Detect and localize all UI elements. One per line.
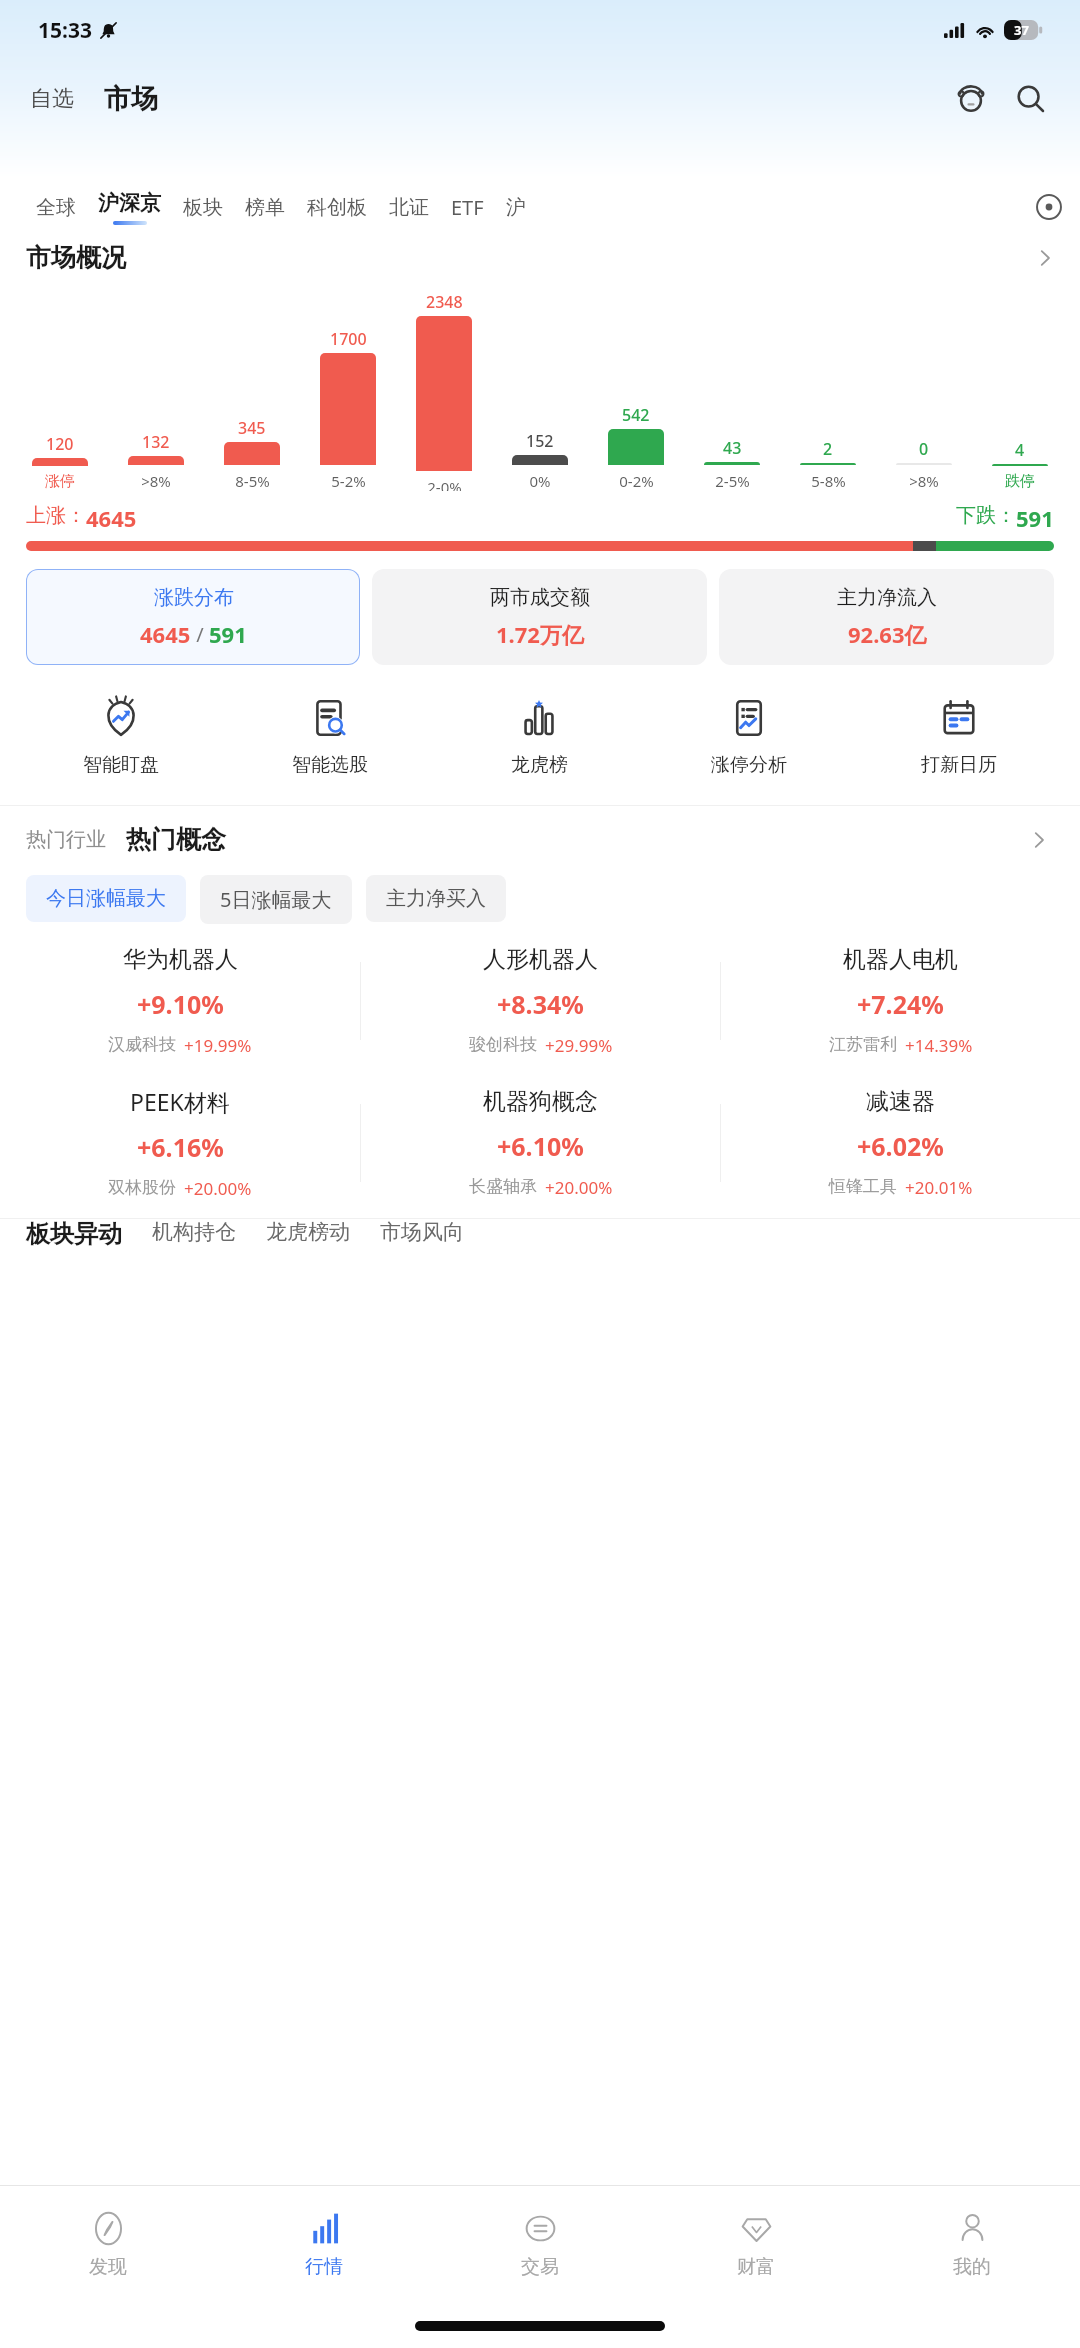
staticText: +20.00%	[545, 1176, 613, 1199]
button[interactable]: 2	[780, 438, 876, 491]
button[interactable]: 43	[684, 437, 780, 491]
button[interactable]: 龙虎榜	[434, 697, 644, 777]
staticText: 恒锋工具	[829, 1176, 897, 1197]
button[interactable]: 542	[588, 404, 684, 491]
staticText: 双林股份	[108, 1177, 176, 1198]
button[interactable]: 345	[204, 417, 300, 491]
button[interactable]: 全球	[26, 189, 86, 226]
button[interactable]: 发现	[0, 2186, 216, 2304]
staticText: 37	[1014, 21, 1029, 39]
button[interactable]: 减速器	[721, 1072, 1080, 1214]
staticText: +6.10%	[497, 1129, 584, 1163]
button[interactable]: 交易	[432, 2186, 648, 2304]
button[interactable]: 榜单	[235, 189, 295, 226]
button[interactable]: 两市成交额	[372, 569, 707, 665]
staticText: 骏创科技	[469, 1034, 537, 1055]
button[interactable]: Settings	[1026, 184, 1072, 230]
staticText: >8%	[141, 471, 171, 491]
button[interactable]: 4	[972, 439, 1068, 491]
staticText: 591	[209, 619, 247, 649]
staticText: 打新日历	[921, 753, 997, 777]
staticText: 15:33	[38, 16, 92, 45]
button[interactable]: 热门概念	[126, 818, 226, 861]
button[interactable]: 智能选股	[225, 697, 434, 777]
button[interactable]: 152	[492, 430, 588, 491]
staticText: 市场	[104, 82, 158, 116]
staticText: 5-2%	[331, 471, 366, 491]
button[interactable]: 人形机器人	[361, 930, 720, 1072]
button[interactable]: 板块	[173, 189, 233, 226]
button[interactable]: 机器人电机	[721, 930, 1080, 1072]
staticText: /	[191, 621, 209, 648]
staticText: 120	[46, 433, 74, 455]
button[interactable]: 0	[876, 438, 972, 491]
button[interactable]: Assistant	[948, 76, 994, 122]
staticText: 财富	[737, 2255, 775, 2279]
staticText: 涨停分析	[711, 753, 787, 777]
button[interactable]: 涨停分析	[644, 697, 854, 777]
button[interactable]: 132	[108, 431, 204, 491]
staticText: 5-8%	[811, 471, 846, 491]
staticText: 8-5%	[235, 471, 270, 491]
button[interactable]: 智能盯盘	[16, 697, 225, 777]
staticText: 减速器	[866, 1087, 935, 1116]
button[interactable]: More	[1024, 825, 1054, 855]
button[interactable]: 科创板	[297, 189, 377, 226]
staticText: 自选	[30, 85, 74, 113]
button[interactable]: 打新日历	[854, 697, 1064, 777]
staticText: 龙虎榜动	[266, 1219, 350, 1245]
button[interactable]: 热门行业	[26, 821, 106, 858]
staticText: 智能盯盘	[83, 753, 159, 777]
staticText: 板块	[183, 195, 223, 220]
staticText: 热门概念	[126, 824, 226, 855]
staticText: 0-2%	[619, 471, 654, 491]
staticText: +20.00%	[184, 1177, 252, 1200]
button[interactable]: 沪	[496, 189, 536, 226]
button[interactable]: 2348	[396, 291, 492, 491]
button[interactable]: 市场	[100, 76, 162, 122]
button[interactable]: 5日涨幅最大	[200, 875, 352, 924]
staticText: +8.34%	[497, 987, 584, 1021]
button[interactable]: 自选	[26, 79, 78, 119]
staticText: 两市成交额	[490, 585, 590, 610]
staticText: 市场风向	[380, 1219, 464, 1245]
button[interactable]: 涨跌分布	[26, 569, 360, 665]
button[interactable]: 今日涨幅最大	[26, 875, 186, 922]
staticText: 92.63亿	[848, 619, 927, 649]
staticText: 跌停	[1005, 472, 1035, 491]
staticText: 152	[526, 430, 554, 452]
staticText: 板块异动	[26, 1219, 122, 1249]
staticText: 2	[823, 438, 833, 460]
staticText: 4645	[86, 503, 137, 533]
button[interactable]: 120	[12, 433, 108, 491]
button[interactable]: 行情	[216, 2186, 432, 2304]
button[interactable]: 沪深京	[88, 184, 171, 231]
button[interactable]: 主力净流入	[719, 569, 1054, 665]
button[interactable]: 我的	[864, 2186, 1080, 2304]
staticText: 主力净流入	[837, 585, 937, 610]
button[interactable]: 主力净买入	[366, 875, 506, 922]
button[interactable]: 财富	[648, 2186, 864, 2304]
staticText: 涨跌分布	[154, 585, 234, 610]
staticText: >8%	[909, 471, 939, 491]
staticText: +19.99%	[184, 1034, 252, 1057]
staticText: 行情	[305, 2255, 343, 2279]
staticText: 43	[723, 437, 742, 459]
staticText: 下跌：	[956, 503, 1016, 528]
staticText: 今日涨幅最大	[46, 886, 166, 911]
button[interactable]: ETF	[441, 188, 494, 227]
staticText: 涨停	[45, 472, 75, 491]
button[interactable]: PEEK材料	[0, 1072, 360, 1214]
button[interactable]: Search	[1008, 76, 1054, 122]
staticText: 全球	[36, 195, 76, 220]
button[interactable]: 机器狗概念	[361, 1072, 720, 1214]
button[interactable]: 华为机器人	[0, 930, 360, 1072]
staticText: +6.16%	[137, 1130, 224, 1164]
staticText: 542	[622, 404, 650, 426]
button[interactable]: 1700	[300, 328, 396, 491]
staticText: 0%	[529, 471, 551, 491]
button[interactable]: 北证	[379, 189, 439, 226]
staticText: 智能选股	[292, 753, 368, 777]
staticText: +14.39%	[905, 1034, 973, 1057]
button[interactable]: 市场概况	[0, 238, 1080, 277]
